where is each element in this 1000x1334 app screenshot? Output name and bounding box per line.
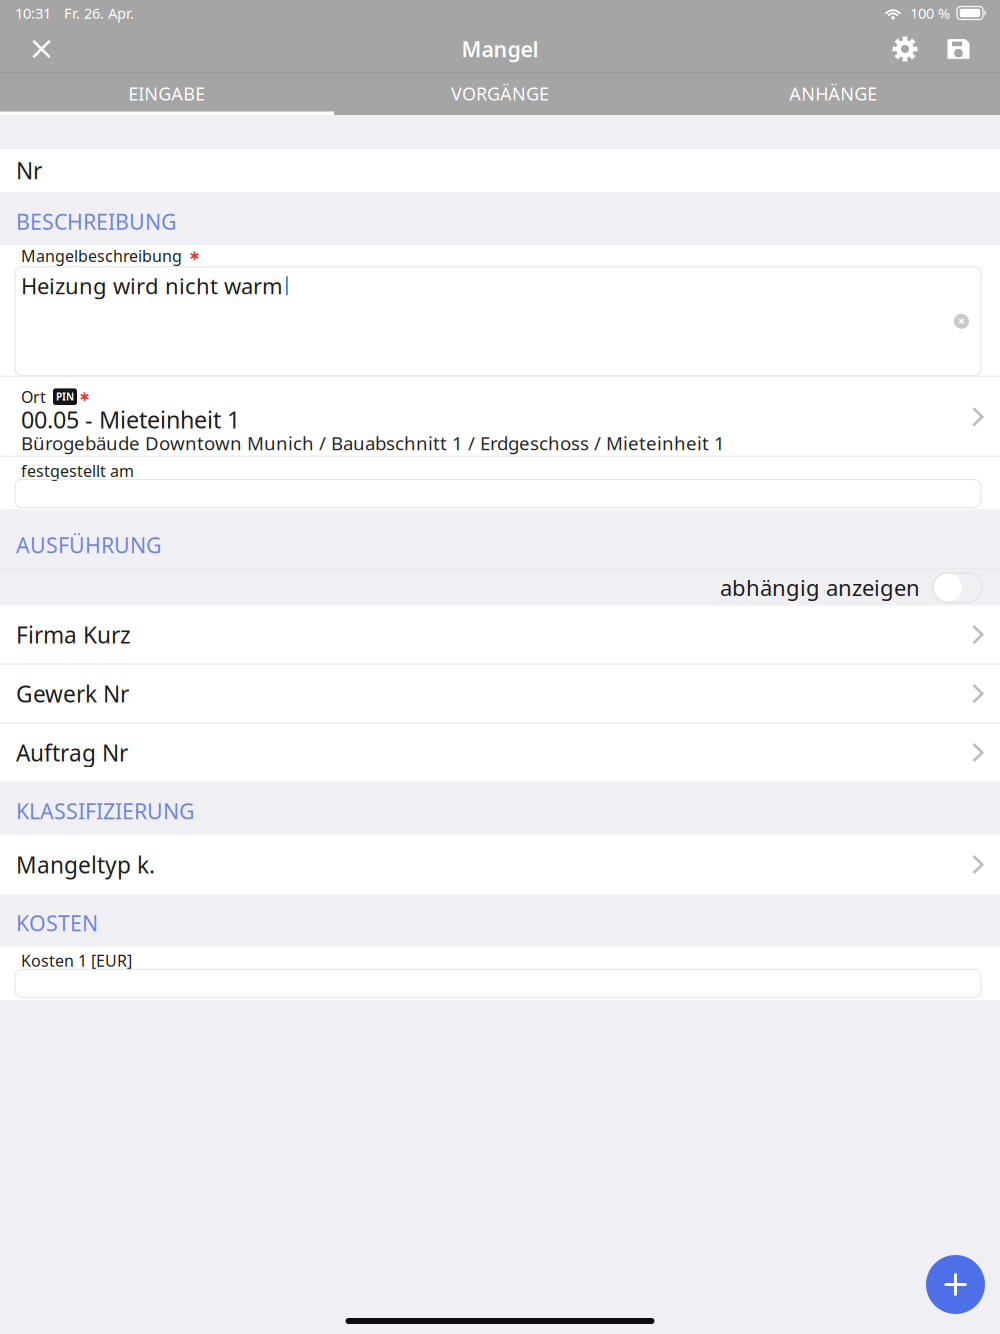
staticText: VORGÄNGE [451, 81, 549, 106]
staticText: PIN [56, 390, 74, 403]
staticText: Ort [21, 386, 46, 408]
button[interactable]: EINGABE [0, 72, 333, 115]
button[interactable]: Ort [0, 377, 1000, 456]
staticText: 00.05 - Mieteinheit 1 [21, 404, 240, 435]
staticText: Mangelbeschreibung [21, 245, 182, 267]
button[interactable]: Speichern [932, 26, 1000, 72]
button[interactable]: Mangeltyp k. [0, 835, 1000, 895]
button[interactable]: Auftrag Nr [0, 724, 1000, 782]
staticText: abhängig anzeigen [720, 573, 920, 603]
staticText: ANHÄNGE [789, 81, 877, 106]
staticText: Nr [16, 155, 42, 186]
button[interactable]: abhängig anzeigen [933, 573, 982, 603]
staticText: Heizung wird nicht warm [21, 271, 283, 301]
staticText: Firma Kurz [16, 619, 131, 650]
button[interactable]: Schließen [0, 26, 71, 72]
button[interactable]: VORGÄNGE [333, 72, 667, 115]
button[interactable]: ANHÄNGE [667, 72, 1000, 115]
button[interactable]: Hinzufügen [926, 1255, 985, 1314]
staticText: Auftrag Nr [16, 737, 128, 768]
staticText: AUSFÜHRUNG [16, 530, 162, 560]
staticText: Mangel [461, 34, 538, 64]
button[interactable]: Einstellungen [878, 26, 932, 72]
staticText: BESCHREIBUNG [16, 207, 177, 236]
staticText: Fr. 26. Apr. [64, 3, 134, 23]
staticText: Bürogebäude Downtown Munich / Bauabschni… [21, 430, 725, 456]
staticText: 100 % [910, 3, 950, 23]
staticText: EINGABE [128, 81, 205, 106]
staticText: KLASSIFIZIERUNG [16, 796, 195, 826]
staticText: KOSTEN [16, 908, 98, 938]
staticText: Kosten 1 [EUR] [21, 950, 132, 971]
staticText: Mangeltyp k. [16, 849, 155, 880]
button[interactable]: Gewerk Nr [0, 665, 1000, 723]
staticText: 10:31 [15, 3, 51, 23]
staticText: Gewerk Nr [16, 678, 129, 709]
staticText: festgestellt am [21, 460, 134, 482]
button[interactable]: Firma Kurz [0, 606, 1000, 664]
